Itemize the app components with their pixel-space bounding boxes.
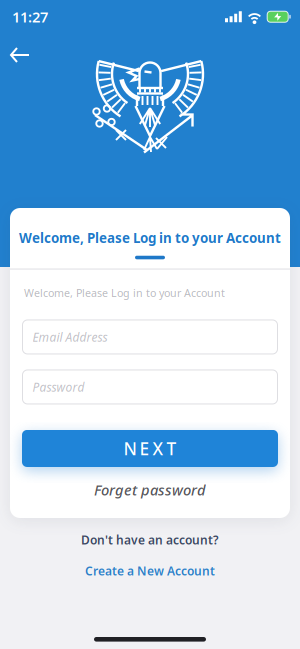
button[interactable]: Back — [10, 47, 30, 63]
staticText: Don't have an account? — [81, 532, 219, 548]
button[interactable]: N E X T — [22, 430, 278, 467]
staticText: Password — [32, 379, 84, 395]
staticText: Create a New Account — [85, 563, 215, 579]
button[interactable]: Create a New Account — [85, 548, 215, 579]
staticText: 11:27 — [12, 7, 48, 26]
staticText: Welcome, Please Log in to your Account — [19, 229, 281, 247]
button[interactable]: Forget password — [94, 467, 206, 499]
staticText: Welcome, Please Log in to your Account — [24, 286, 225, 300]
button[interactable]: Email Address — [22, 320, 277, 354]
staticText: N E X T — [123, 437, 176, 460]
staticText: Forget password — [94, 480, 206, 499]
staticText: Email Address — [32, 329, 107, 345]
button[interactable]: Password — [22, 370, 277, 404]
